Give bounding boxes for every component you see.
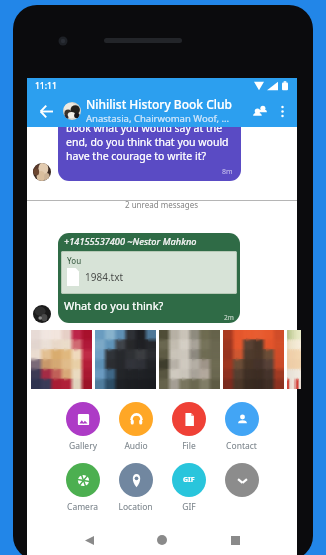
button[interactable]: Photo — [95, 330, 156, 389]
button[interactable]: More options — [272, 101, 292, 121]
staticText: GIF — [183, 475, 195, 485]
button[interactable]: Photo — [223, 330, 284, 389]
button[interactable]: Camera — [56, 463, 109, 513]
staticText: Gallery — [69, 440, 97, 452]
button[interactable]: Back — [77, 528, 101, 552]
staticText: Anastasia, Chairwoman Woof, ... — [86, 112, 230, 125]
button[interactable]: book what you would say at the end, do y… — [58, 116, 241, 181]
button[interactable]: Home — [150, 528, 174, 552]
staticText: 1984.txt — [85, 270, 124, 284]
staticText: File — [182, 440, 196, 452]
staticText: 2m — [224, 313, 234, 322]
button[interactable]: You — [61, 251, 237, 294]
button[interactable]: Group members — [248, 99, 272, 123]
button[interactable]: Audio — [109, 402, 162, 452]
button[interactable]: +14155537400 ~Nestor Mahkno — [58, 233, 240, 323]
staticText: Audio — [124, 440, 148, 452]
button[interactable]: Back — [31, 96, 61, 126]
button[interactable]: File — [162, 402, 215, 452]
staticText: GIF — [182, 501, 196, 513]
staticText: You — [67, 255, 82, 266]
staticText: 2 unread messages — [125, 199, 199, 210]
staticText: +14155537400 ~Nestor Mahkno — [64, 235, 197, 248]
button[interactable]: Recents — [223, 528, 247, 552]
staticText: 11:11 — [35, 80, 57, 92]
staticText: Camera — [67, 501, 98, 513]
button[interactable]: Location — [109, 463, 162, 513]
staticText: 8m — [222, 167, 233, 177]
staticText: Nihilist History Book Club — [86, 96, 233, 112]
button[interactable]: Gallery — [56, 402, 109, 452]
button[interactable]: Photo — [31, 330, 92, 389]
button[interactable]: Photo — [287, 330, 301, 389]
staticText: Location — [118, 501, 153, 513]
staticText: book what you would say at the end, do y… — [66, 121, 233, 163]
staticText: What do you think? — [64, 298, 164, 313]
button[interactable]: GIF — [162, 463, 215, 513]
staticText: Contact — [226, 440, 257, 452]
button[interactable]: Contact — [215, 402, 268, 452]
button[interactable]: Photo — [159, 330, 220, 389]
button[interactable]: Collapse — [215, 463, 268, 501]
